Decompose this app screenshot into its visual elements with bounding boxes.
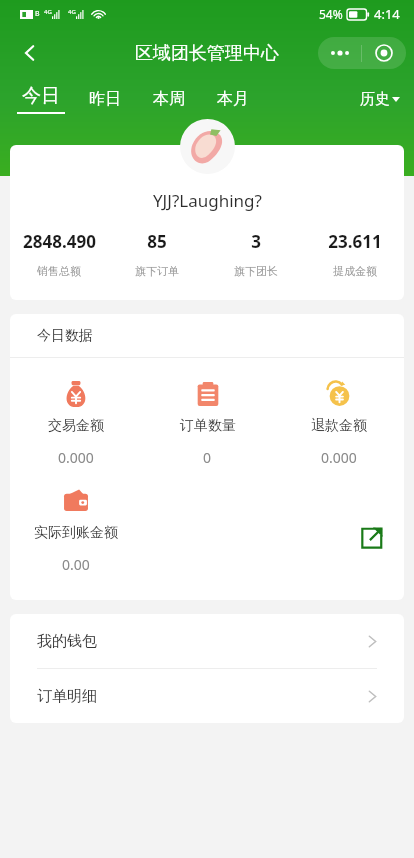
staticText: 今日数据 xyxy=(37,327,93,345)
staticText: 本月 xyxy=(217,89,249,109)
button[interactable]: 本月 xyxy=(201,78,265,120)
staticText: 2848.490 xyxy=(23,230,96,253)
button[interactable]: 本周 xyxy=(137,78,201,120)
staticText: B xyxy=(35,9,40,19)
staticText: 3 xyxy=(251,230,261,253)
staticText: 销售总额 xyxy=(37,264,81,278)
button[interactable]: Avatar xyxy=(180,119,235,174)
staticText: 旗下订单 xyxy=(135,264,179,278)
staticText: 交易金额 xyxy=(48,417,104,435)
staticText: 旗下团长 xyxy=(234,264,278,278)
staticText: YJJ?Laughing? xyxy=(153,189,262,212)
button[interactable]: 实际到账金额 xyxy=(10,487,142,574)
staticText: 0.000 xyxy=(58,448,94,467)
button[interactable] xyxy=(362,37,406,69)
staticText: 实际到账金额 xyxy=(34,524,118,542)
staticText: 订单数量 xyxy=(180,417,236,435)
staticText: 4G xyxy=(44,8,52,16)
staticText: 85 xyxy=(147,230,167,253)
staticText: 23.611 xyxy=(328,230,382,253)
button[interactable]: 2848.490 xyxy=(10,230,108,278)
staticText: 54% xyxy=(319,6,343,22)
button[interactable]: 订单明细 xyxy=(10,669,404,723)
staticText: 今日 xyxy=(22,84,60,108)
button[interactable]: Share xyxy=(348,514,396,562)
staticText: 提成金额 xyxy=(333,264,377,278)
button[interactable]: 85 xyxy=(108,230,206,278)
button[interactable] xyxy=(318,37,361,69)
button[interactable]: 订单数量 xyxy=(142,380,273,467)
button[interactable]: 3 xyxy=(206,230,305,278)
staticText: 历史 xyxy=(360,90,390,109)
staticText: 0.00 xyxy=(62,555,90,574)
button[interactable]: Back xyxy=(8,31,52,75)
button[interactable]: 交易金额 xyxy=(10,380,142,467)
staticText: 0.000 xyxy=(321,448,357,467)
staticText: 昨日 xyxy=(89,89,121,109)
staticText: 退款金额 xyxy=(311,417,367,435)
button[interactable]: 23.611 xyxy=(305,230,404,278)
button[interactable]: 退款金额 xyxy=(273,380,404,467)
button[interactable]: 我的钱包 xyxy=(10,614,404,668)
staticText: 4:14 xyxy=(374,5,400,23)
staticText: 本周 xyxy=(153,89,185,109)
other: Menu xyxy=(318,37,406,69)
button[interactable]: 昨日 xyxy=(73,78,137,120)
button[interactable]: 今日 xyxy=(9,78,73,120)
staticText: 0 xyxy=(203,448,212,467)
staticText: 4G xyxy=(68,8,76,16)
staticText: 订单明细 xyxy=(37,687,97,706)
staticText: 我的钱包 xyxy=(37,632,97,651)
button[interactable]: 历史 xyxy=(360,90,400,109)
staticText: 区域团长管理中心 xyxy=(135,42,279,65)
